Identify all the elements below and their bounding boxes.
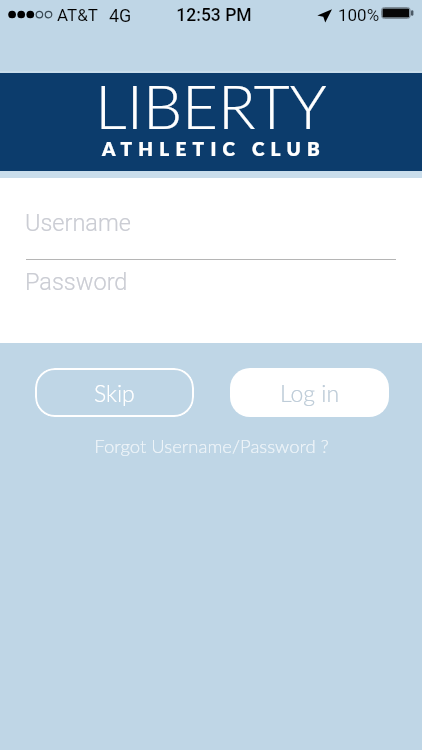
staticText: 12:53 PM (3, 5, 422, 26)
button[interactable]: Skip (35, 368, 194, 417)
button[interactable]: Forgot Username/Password ? (94, 431, 329, 453)
staticText: AT&T (57, 5, 98, 25)
staticText: Skip (94, 379, 135, 407)
staticText: Log in (280, 379, 340, 407)
staticText: ATHLETIC CLUB (3, 137, 422, 160)
button[interactable]: Username (0, 192, 422, 244)
staticText: Password (25, 268, 128, 296)
staticText: 100% (338, 5, 380, 25)
staticText: Username (25, 209, 131, 237)
button[interactable]: Log in (230, 368, 389, 417)
button[interactable]: Password (0, 260, 422, 312)
other: Location services active (317, 8, 332, 23)
staticText: LIBERTY (0, 68, 422, 142)
other: Battery 100 percent (381, 7, 415, 19)
staticText: 4G (109, 5, 132, 26)
